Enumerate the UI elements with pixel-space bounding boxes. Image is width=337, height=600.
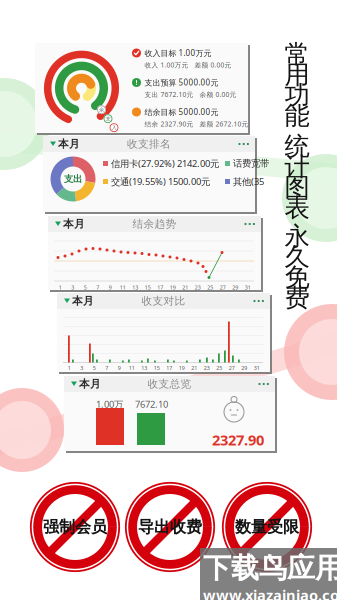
staticText: 本月	[58, 137, 80, 150]
staticText: 交通(19.55%) 1500.00元	[111, 175, 210, 188]
staticText: 结余目标 5000.00元	[144, 107, 218, 117]
staticText: 13	[132, 284, 138, 291]
staticText: 5	[84, 284, 87, 291]
staticText: 5	[93, 364, 96, 372]
staticText: 支出	[64, 173, 82, 185]
staticText: 11	[129, 364, 135, 372]
staticText: 下载鸟应用	[203, 551, 337, 585]
staticText: 11	[120, 284, 126, 291]
staticText: 信用卡(27.92%) 2142.00元	[111, 157, 219, 170]
staticText: 29	[241, 364, 247, 372]
staticText: 收入 1.00万元 差额 0.00元	[144, 61, 231, 69]
staticText: 19	[179, 364, 185, 372]
staticText: 支出 7672.10元 余额 0.00元	[144, 90, 236, 99]
staticText: 1.00万	[96, 398, 123, 410]
staticText: 1	[59, 284, 62, 291]
staticText: 表	[284, 192, 309, 223]
button[interactable]: 导出收费	[124, 481, 216, 573]
staticText: 29	[232, 284, 238, 291]
staticText: 17	[166, 364, 172, 372]
staticText: 27	[220, 284, 226, 291]
staticText: 久	[284, 241, 309, 272]
staticText: 23	[204, 364, 210, 372]
staticText: 21	[182, 284, 188, 291]
button[interactable]: 本月	[57, 293, 270, 372]
staticText: 收支总览	[147, 377, 191, 390]
staticText: 统	[284, 131, 309, 162]
staticText: 入	[111, 124, 116, 131]
staticText: 其他(35	[233, 175, 264, 188]
staticText: 本月	[63, 217, 85, 230]
staticText: 13	[141, 364, 147, 372]
staticText: 3	[80, 364, 83, 372]
staticText: 收支对比	[141, 294, 185, 307]
button[interactable]: 本月	[48, 216, 261, 290]
button[interactable]: 余	[35, 43, 248, 133]
staticText: 3	[71, 284, 74, 291]
staticText: 1	[68, 364, 71, 372]
staticText: 计	[284, 151, 309, 182]
staticText: www.xiazainiao.com	[203, 585, 337, 600]
staticText: 收入目标 1.00万元	[144, 48, 211, 58]
staticText: 数量受限	[235, 517, 299, 537]
staticText: 导出收费	[138, 517, 202, 537]
staticText: 常	[284, 39, 309, 70]
staticText: 19	[170, 284, 176, 291]
staticText: 费	[284, 282, 309, 313]
staticText: 本月	[79, 377, 101, 390]
staticText: 15	[154, 364, 160, 372]
staticText: 23	[195, 284, 201, 291]
staticText: 7	[105, 364, 108, 372]
staticText: 25	[216, 364, 222, 372]
staticText: 结余 2327.90元 差额 2672.10元	[144, 120, 248, 128]
staticText: 支	[105, 115, 110, 122]
staticText: 15	[145, 284, 151, 291]
staticText: 强制会员	[43, 517, 107, 537]
staticText: 收支排名	[127, 137, 171, 150]
staticText: 21	[191, 364, 197, 372]
staticText: 能	[284, 100, 309, 131]
staticText: 17	[157, 284, 163, 291]
staticText: 支出预算 5000.00元	[144, 77, 218, 88]
staticText: 7672.10	[135, 398, 168, 410]
button[interactable]: 本月	[64, 376, 275, 451]
staticText: 本月	[72, 294, 94, 307]
staticText: 永	[284, 221, 309, 252]
staticText: 余	[99, 106, 104, 113]
staticText: 7	[96, 284, 99, 291]
button[interactable]: 本月	[43, 136, 255, 212]
staticText: 功	[284, 80, 309, 111]
staticText: 用	[284, 59, 309, 90]
staticText: 9	[109, 284, 112, 291]
staticText: 免	[284, 262, 309, 293]
staticText: 9	[118, 364, 121, 372]
staticText: 27	[229, 364, 235, 372]
staticText: 31	[254, 364, 260, 372]
staticText: 结余趋势	[132, 217, 176, 230]
staticText: 25	[207, 284, 213, 291]
staticText: 话费宽带	[233, 158, 269, 169]
button[interactable]: 数量受限	[221, 481, 313, 573]
staticText: 2327.90	[212, 430, 264, 449]
staticText: 31	[245, 284, 251, 291]
staticText: 图	[284, 172, 309, 203]
button[interactable]: 强制会员	[29, 481, 121, 573]
